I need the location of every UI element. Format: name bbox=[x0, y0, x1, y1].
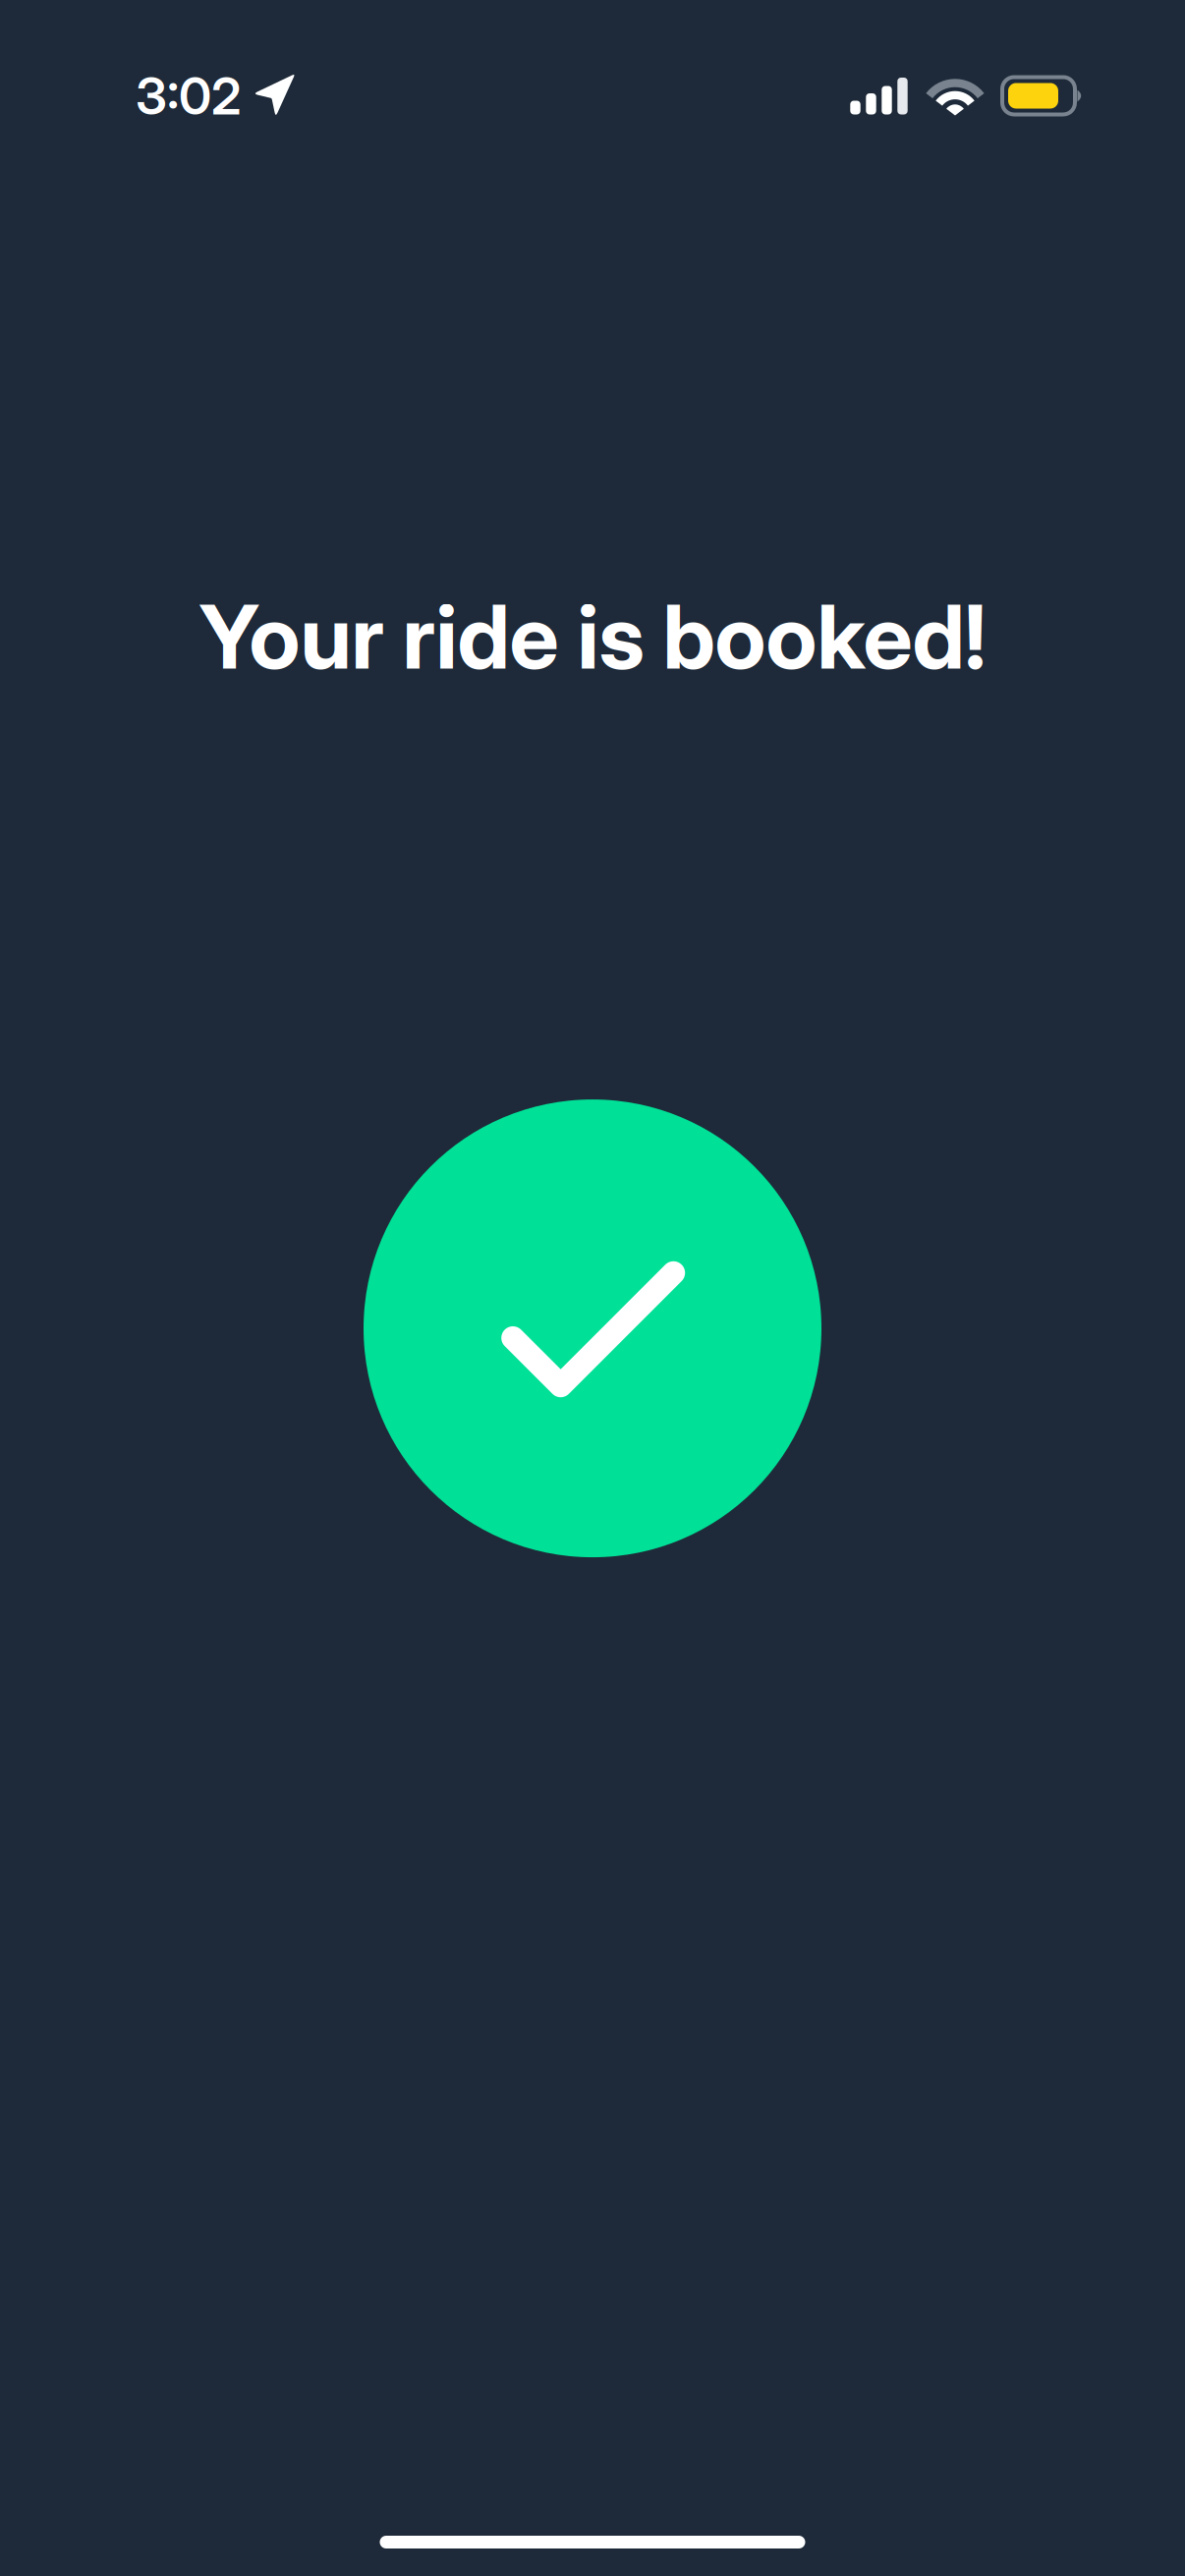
staticText: 3:02 bbox=[136, 65, 241, 127]
staticText: Your ride is booked! bbox=[199, 584, 986, 690]
